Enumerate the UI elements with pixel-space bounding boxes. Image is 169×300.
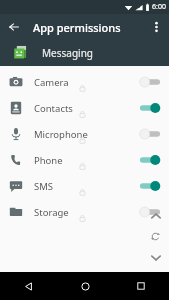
staticText: Camera [34,76,69,89]
button[interactable]: Contacts [0,95,169,121]
staticText: Microphone [34,128,88,141]
button[interactable]: More options [146,17,166,37]
staticText: 6:00 [152,2,166,12]
button[interactable]: Back [0,272,57,300]
button[interactable]: SMS [0,173,169,199]
button[interactable]: Scroll up [147,207,164,224]
button[interactable]: Microphone denied [138,127,162,141]
button[interactable]: Messaging [0,40,169,66]
button[interactable]: Recent apps [113,272,169,300]
button[interactable]: Storage denied [138,205,162,219]
button[interactable]: Home [57,272,113,300]
staticText: Storage [34,206,69,219]
button[interactable]: Navigate up [4,17,24,37]
button[interactable]: Phone [0,147,169,173]
staticText: App permissions [33,20,121,35]
staticText: Phone [34,154,63,167]
button[interactable]: Scroll down [147,249,164,266]
button[interactable]: SMS allowed [138,179,162,193]
button[interactable]: Phone allowed [138,153,162,167]
button[interactable]: Camera denied [138,75,162,89]
staticText: SMS [34,180,54,193]
staticText: Contacts [34,102,73,115]
button[interactable]: Storage [0,199,169,225]
button[interactable]: Contacts allowed [138,101,162,115]
button[interactable]: Refresh [147,228,164,245]
button[interactable]: Camera [0,69,169,95]
staticText: Messaging [42,46,93,60]
button[interactable]: Microphone [0,121,169,147]
